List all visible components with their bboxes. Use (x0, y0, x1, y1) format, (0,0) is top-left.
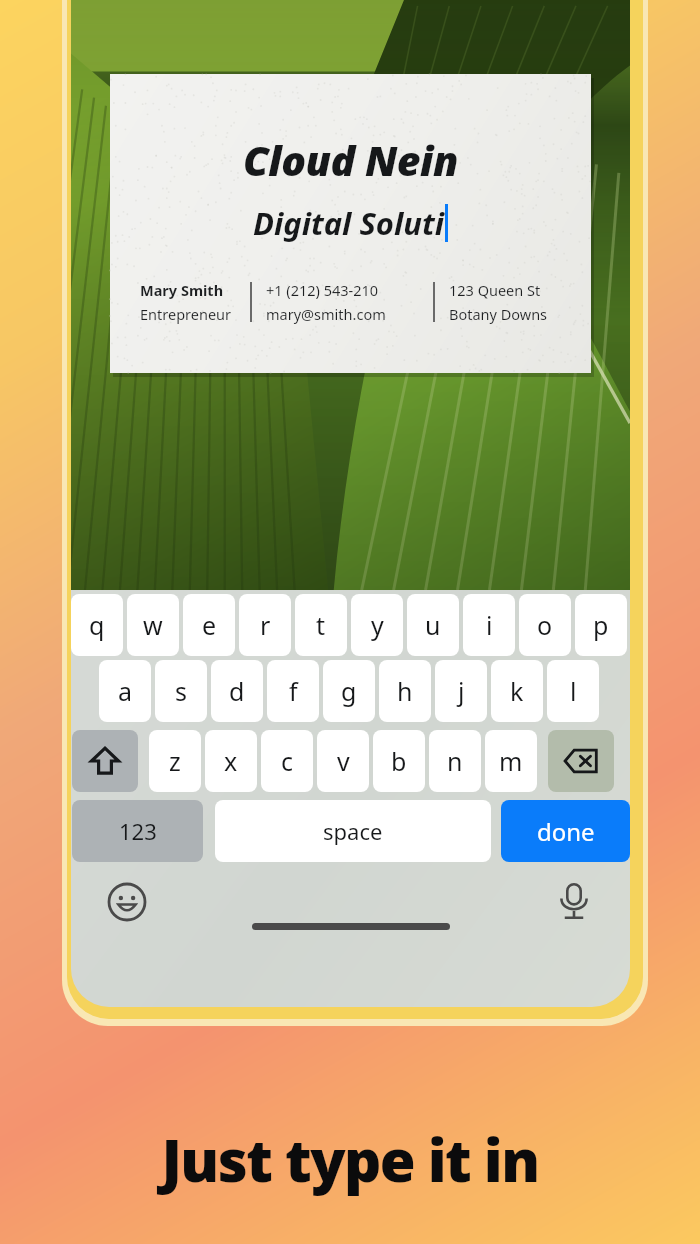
staticText: c (281, 744, 294, 778)
button[interactable]: Voice input (551, 878, 597, 924)
staticText: Digital Soluti (253, 202, 444, 244)
button[interactable]: v (317, 730, 369, 792)
staticText: d (229, 674, 245, 708)
staticText: Mary Smith (140, 280, 224, 300)
staticText: Botany Downs (449, 304, 548, 324)
staticText: +1 (212) 543-210 (266, 280, 379, 300)
staticText: m (499, 744, 523, 778)
staticText: e (202, 608, 217, 642)
staticText: v (337, 744, 350, 778)
staticText: z (169, 744, 181, 778)
staticText: u (425, 608, 441, 642)
button[interactable]: m (485, 730, 537, 792)
button[interactable]: Emoji (105, 880, 149, 924)
button[interactable]: r (239, 594, 291, 656)
staticText: n (447, 744, 463, 778)
button[interactable]: h (379, 660, 431, 722)
button[interactable]: o (519, 594, 571, 656)
button[interactable]: k (491, 660, 543, 722)
button[interactable]: d (211, 660, 263, 722)
staticText: Just type it in (0, 1120, 700, 1199)
button[interactable]: y (351, 594, 403, 656)
button[interactable]: f (267, 660, 319, 722)
staticText: r (260, 608, 271, 642)
staticText: j (458, 674, 465, 708)
staticText: x (224, 744, 238, 778)
staticText: q (89, 608, 105, 642)
button[interactable]: i (463, 594, 515, 656)
staticText: k (510, 674, 524, 708)
staticText: l (570, 674, 577, 708)
button[interactable]: s (155, 660, 207, 722)
staticText: g (341, 674, 357, 708)
staticText: p (593, 608, 609, 642)
button[interactable]: n (429, 730, 481, 792)
staticText: b (391, 744, 407, 778)
button[interactable]: a (99, 660, 151, 722)
button[interactable]: z (149, 730, 201, 792)
staticText: f (289, 674, 298, 708)
staticText: s (175, 674, 187, 708)
button[interactable]: Backspace (548, 730, 614, 792)
button[interactable]: w (127, 594, 179, 656)
button[interactable]: t (295, 594, 347, 656)
staticText: i (486, 608, 493, 642)
button[interactable]: u (407, 594, 459, 656)
button[interactable]: q (71, 594, 123, 656)
staticText: o (537, 608, 553, 642)
staticText: Cloud Nein (243, 132, 458, 188)
button[interactable]: 123 (72, 800, 203, 862)
button[interactable]: g (323, 660, 375, 722)
staticText: 123 Queen St (449, 280, 541, 300)
button[interactable]: p (575, 594, 627, 656)
staticText: done (537, 815, 595, 848)
staticText: 123 (119, 816, 157, 846)
button[interactable]: c (261, 730, 313, 792)
button[interactable]: b (373, 730, 425, 792)
button[interactable]: Shift (72, 730, 138, 792)
staticText: h (397, 674, 413, 708)
button[interactable]: done (501, 800, 630, 862)
staticText: Entrepreneur (140, 304, 232, 324)
button[interactable]: j (435, 660, 487, 722)
button[interactable]: space (215, 800, 491, 862)
button[interactable]: e (183, 594, 235, 656)
staticText: w (143, 608, 163, 642)
button[interactable]: l (547, 660, 599, 722)
button[interactable]: x (205, 730, 257, 792)
staticText: y (371, 608, 384, 642)
staticText: t (316, 608, 326, 642)
staticText: a (118, 674, 133, 708)
staticText: mary@smith.com (266, 304, 386, 324)
staticText: space (323, 816, 383, 846)
